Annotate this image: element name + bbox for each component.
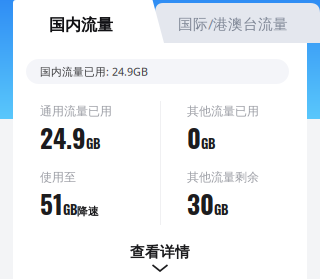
staticText: 0 — [187, 119, 201, 156]
staticText: 国内流量已用: 24.9GB — [40, 64, 148, 79]
button[interactable]: 查看详情 — [0, 239, 320, 275]
staticText: GB — [214, 200, 228, 219]
staticText: 查看详情 — [130, 243, 190, 261]
staticText: 30 — [187, 185, 214, 222]
staticText: 24.9 — [40, 119, 86, 156]
staticText: 使用至 — [40, 170, 76, 185]
button[interactable]: 国内流量 — [49, 15, 119, 35]
staticText: GB — [201, 134, 215, 153]
staticText: 51 — [40, 185, 63, 222]
staticText: 降速 — [77, 205, 99, 218]
staticText: 通用流量已用 — [40, 104, 112, 119]
staticText: 国际/港澳台流量 — [178, 14, 288, 33]
staticText: 国内流量 — [49, 15, 113, 35]
staticText: GB — [63, 200, 77, 219]
button[interactable]: 国际/港澳台流量 — [152, 3, 320, 43]
staticText: GB — [86, 134, 100, 153]
staticText: 其他流量剩余 — [187, 170, 259, 185]
staticText: 其他流量已用 — [187, 104, 259, 119]
